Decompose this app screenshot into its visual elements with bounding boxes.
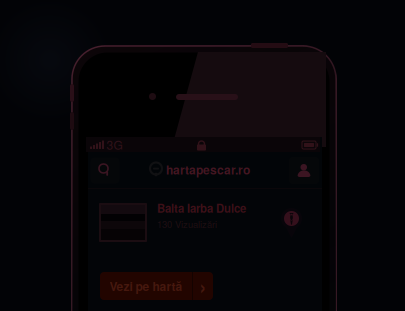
staticText: 3G bbox=[106, 136, 122, 153]
button[interactable]: Search bbox=[88, 152, 122, 189]
button[interactable]: Balta Iarba Dulce bbox=[88, 189, 322, 249]
staticText: Balta Iarba Dulce bbox=[157, 200, 246, 216]
button[interactable]: Vezi pe hartă bbox=[100, 272, 213, 300]
staticText: › bbox=[199, 272, 206, 300]
staticText: 130 Vizualizări bbox=[157, 217, 217, 231]
staticText: hartapescar.ro bbox=[166, 161, 250, 178]
button[interactable]: Account bbox=[286, 152, 322, 189]
staticText: Vezi pe hartă bbox=[109, 277, 182, 295]
